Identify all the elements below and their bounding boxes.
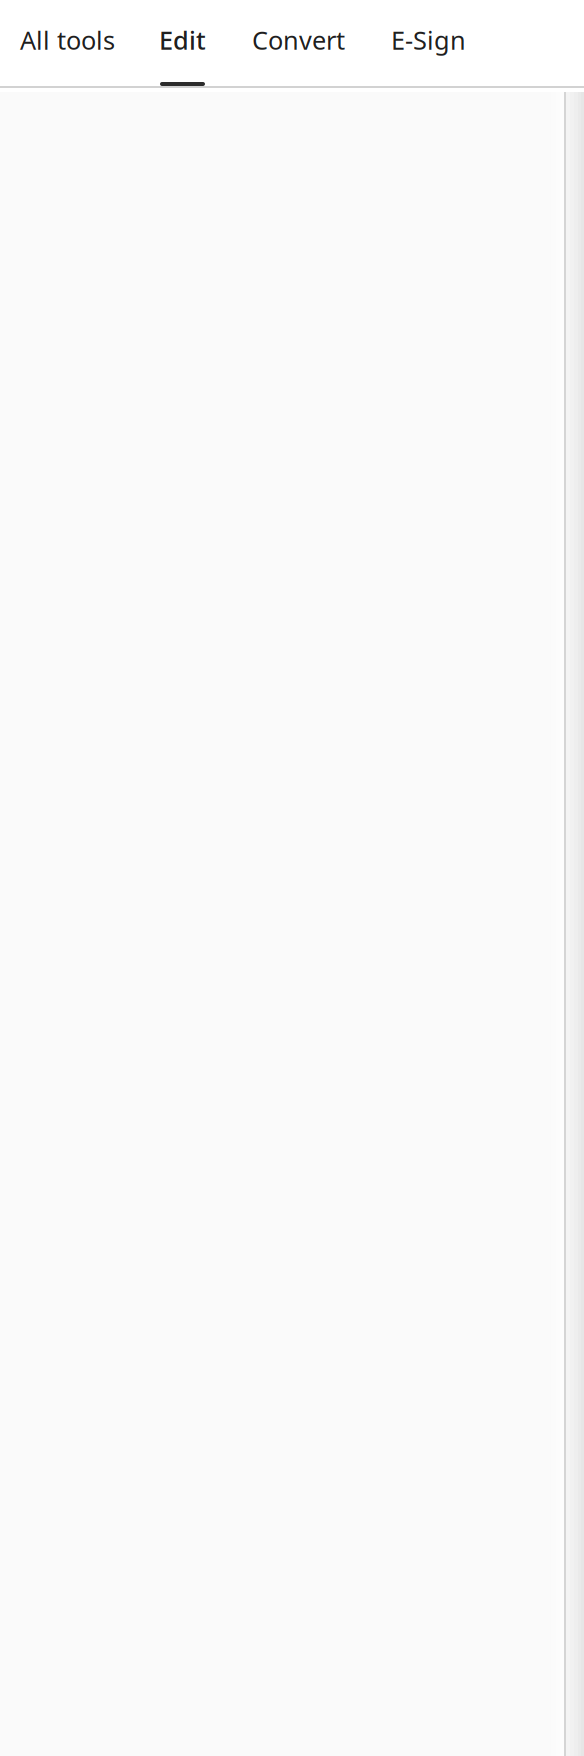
button[interactable]: Convert (206, 0, 345, 86)
button[interactable]: E-Sign (345, 0, 466, 86)
button[interactable]: All tools (0, 0, 115, 86)
button[interactable]: Edit (115, 0, 206, 86)
staticText: E-Sign (391, 23, 466, 57)
staticText: All tools (20, 23, 115, 57)
staticText: Convert (252, 23, 345, 57)
staticText: Edit (159, 23, 206, 57)
